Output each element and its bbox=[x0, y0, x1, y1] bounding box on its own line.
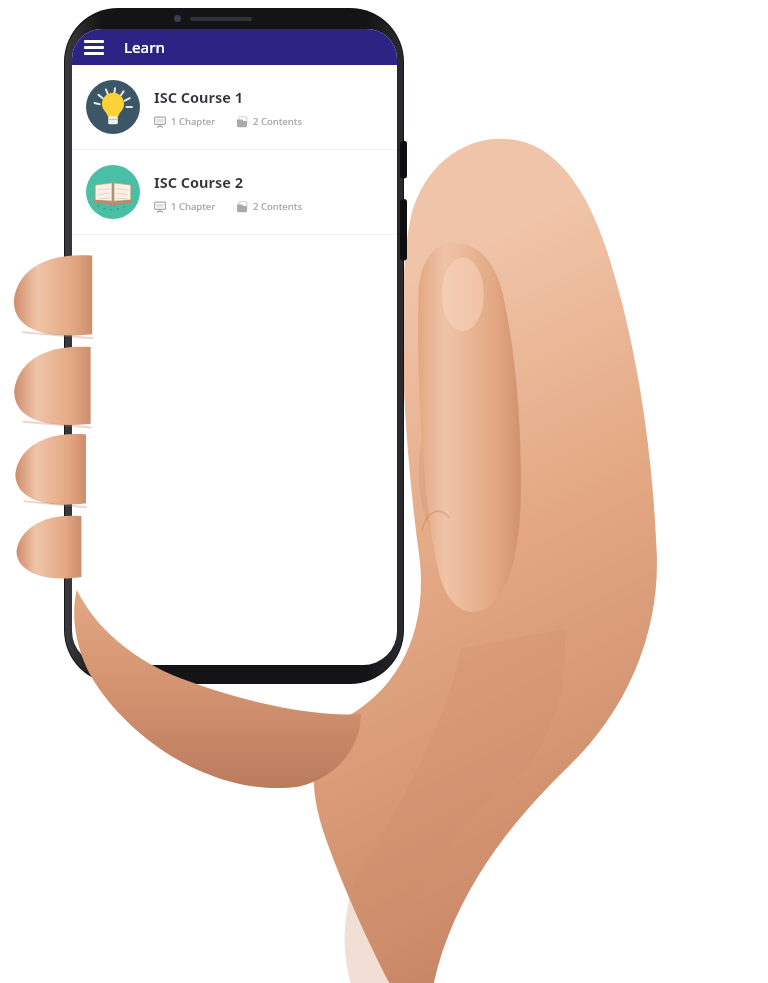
button[interactable]: ISC Course 2 bbox=[72, 150, 397, 234]
staticText: ISC Course 1 bbox=[154, 87, 243, 107]
staticText: 2 Contents bbox=[253, 115, 303, 128]
staticText: 2 Contents bbox=[253, 200, 303, 213]
staticText: 1 Chapter bbox=[171, 200, 216, 213]
button[interactable]: ISC Course 1 bbox=[72, 65, 397, 149]
staticText: ISC Course 2 bbox=[154, 172, 243, 192]
staticText: 1 Chapter bbox=[171, 115, 216, 128]
staticText: Learn bbox=[124, 37, 165, 57]
button[interactable]: Open navigation menu bbox=[81, 34, 107, 60]
